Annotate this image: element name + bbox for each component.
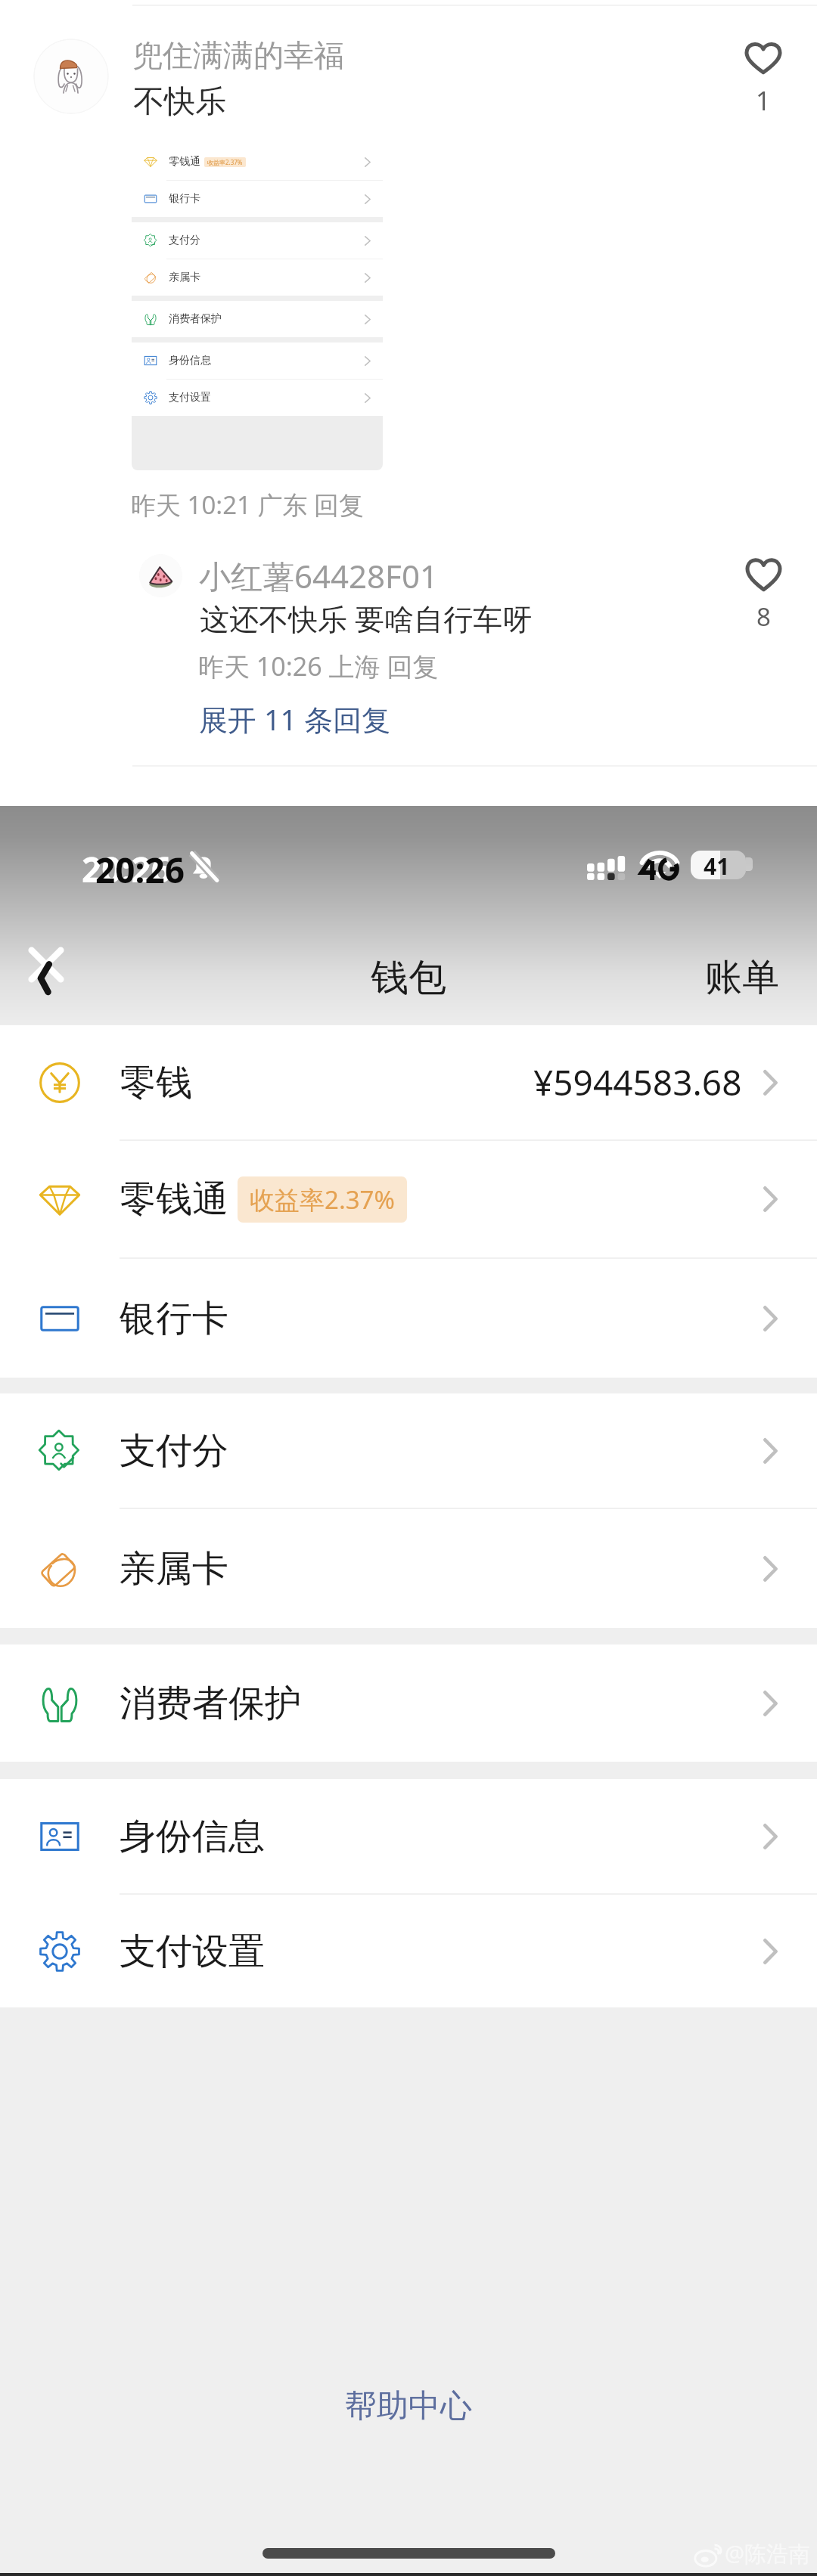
button[interactable]: 帮助中心 [345, 2386, 472, 2426]
button[interactable]: Avatar [33, 39, 109, 114]
staticText: 支付设置 [120, 1929, 265, 1974]
staticText: 零钱通 [169, 155, 200, 169]
staticText: 消费者保护 [120, 1681, 301, 1726]
button[interactable]: 展开 11 条回复 [199, 699, 391, 739]
staticText: 零钱 [120, 1060, 192, 1105]
staticText: 银行卡 [169, 192, 200, 206]
staticText: 收益率2.37% [207, 158, 243, 166]
button[interactable]: 支付分 [0, 1393, 817, 1508]
staticText: 不快乐 [133, 82, 226, 122]
button[interactable]: 昨天 10:26 上海 回复 [198, 649, 439, 684]
button[interactable]: Close [3, 928, 86, 1001]
button[interactable]: Image [132, 144, 383, 470]
staticText: 亲属卡 [169, 271, 200, 284]
staticText: 支付分 [120, 1428, 228, 1474]
staticText: 41 [704, 851, 730, 879]
button[interactable]: 银行卡 [0, 1259, 817, 1378]
staticText: @陈浩南 [725, 2538, 811, 2568]
staticText: 1 [756, 83, 771, 118]
staticText: ¥5944583.68 [533, 1059, 742, 1106]
button[interactable]: 账单 [705, 954, 817, 1001]
button[interactable]: 消费者保护 [0, 1644, 817, 1762]
staticText: 零钱通 [120, 1176, 228, 1222]
button[interactable]: 支付设置 [0, 1895, 817, 2007]
button[interactable]: Like reply [728, 558, 799, 634]
staticText: 20:26 [82, 845, 172, 893]
staticText: 消费者保护 [169, 312, 222, 326]
button[interactable]: 身份信息 [0, 1779, 817, 1893]
staticText: 身份信息 [169, 354, 211, 367]
button[interactable]: Like [728, 42, 799, 118]
button[interactable]: 小红薯64428F01 [199, 554, 438, 597]
staticText: 钱包 [371, 954, 446, 1002]
button[interactable]: 昨天 10:21 广东 回复 [131, 488, 365, 522]
staticText: 支付分 [169, 234, 200, 247]
button[interactable]: 零钱 [0, 1025, 817, 1139]
button[interactable]: 亲属卡 [0, 1509, 817, 1628]
staticText: 这还不快乐 要啥自行车呀 [200, 598, 533, 638]
button[interactable]: Reply avatar [139, 554, 182, 597]
staticText: 8 [756, 600, 771, 634]
staticText: 20:26 [95, 846, 185, 894]
staticText: 亲属卡 [120, 1546, 228, 1592]
staticText: 银行卡 [120, 1296, 228, 1341]
staticText: 收益率2.37% [250, 1183, 395, 1217]
button[interactable]: 兜住满满的幸福 [132, 36, 344, 74]
staticText: 支付设置 [169, 391, 211, 405]
staticText: 身份信息 [120, 1814, 265, 1859]
button[interactable]: 零钱通 [0, 1141, 817, 1257]
